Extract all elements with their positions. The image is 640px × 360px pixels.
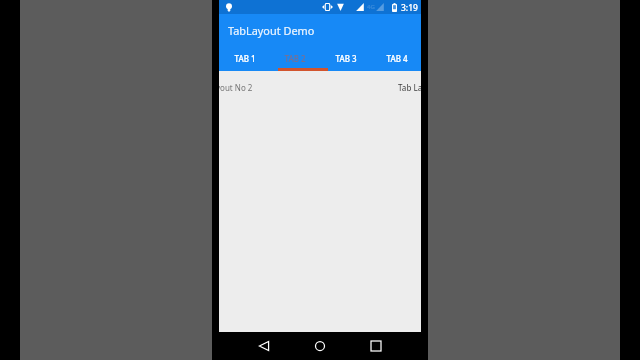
staticText: TabLayout Demo [228,23,315,38]
staticText: 3:19 [401,2,418,14]
staticText: TAB 1 [234,53,256,64]
button[interactable]: TAB 4 [370,45,421,71]
staticText: Tab Layout No 2 [219,82,253,93]
staticText: Tab Layout No 3 [398,82,421,93]
staticText: TAB 3 [335,53,357,64]
button[interactable]: Home [302,332,338,360]
button[interactable]: TAB 1 [219,45,269,71]
button[interactable]: TAB 2 [269,45,319,71]
staticText: 4G [367,3,375,11]
staticText: TAB 4 [386,53,408,64]
button[interactable]: Back [246,332,282,360]
button[interactable]: TAB 3 [319,45,370,71]
staticText: TAB 2 [284,53,306,64]
button[interactable]: Recents [358,332,394,360]
